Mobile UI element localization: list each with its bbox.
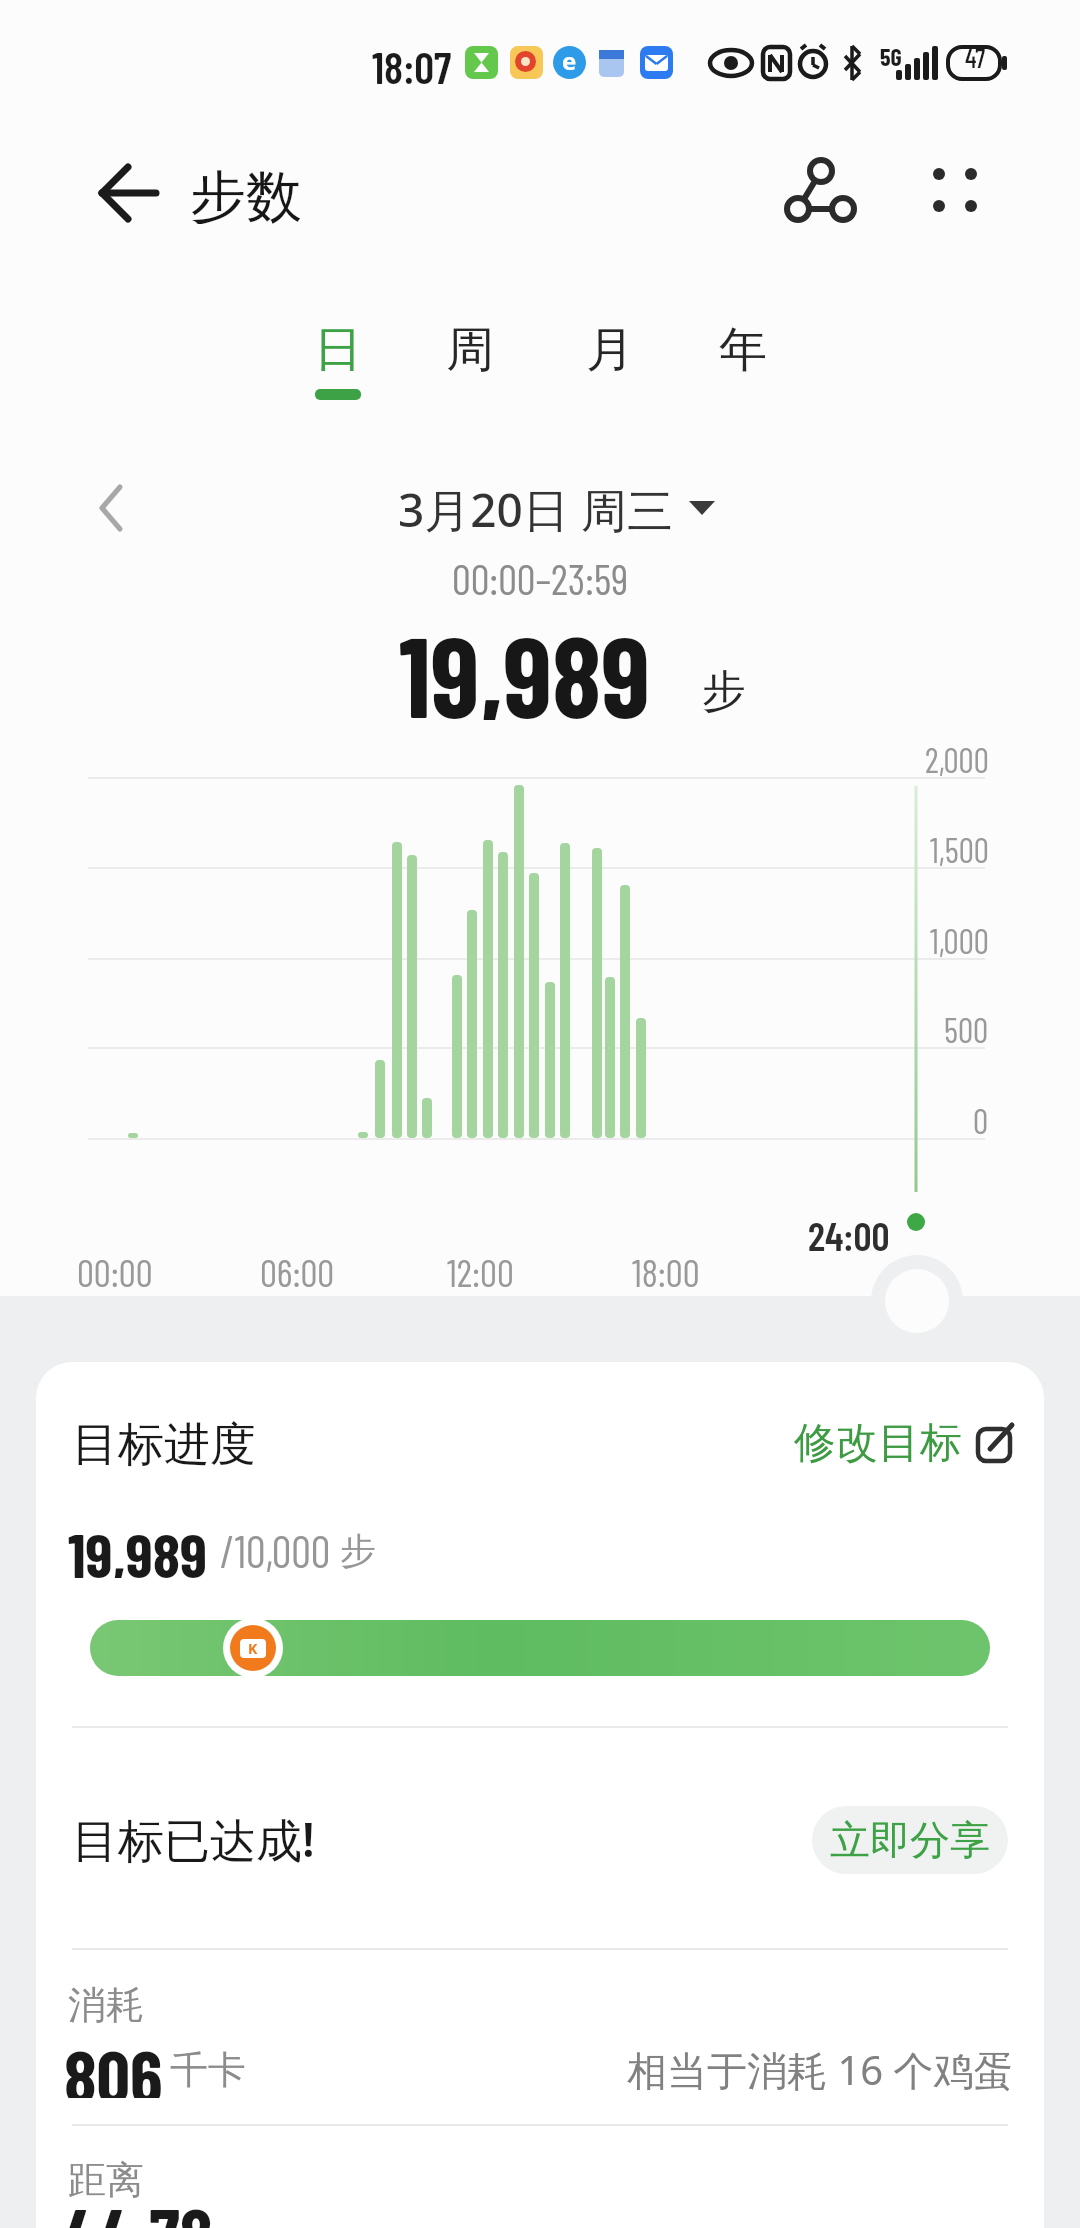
staticText: 2,000 [925,739,989,780]
staticText: 1,500 [930,829,989,870]
staticText: 立即分享 [830,1815,990,1865]
button[interactable]: 周 [420,319,520,381]
staticText: 步数 [190,162,302,224]
staticText: 相当于消耗 16 个鸡蛋 [627,2042,1014,2092]
staticText: 19,989 [68,1516,207,1578]
button[interactable] [76,152,168,236]
staticText: 日 [314,320,362,380]
staticText: /10,000 [220,1524,331,1574]
staticText: 距离 [68,2156,144,2204]
staticText: 00:00–23:59 [452,553,629,603]
staticText: 47 [965,42,986,72]
staticText: 消耗 [68,1981,144,2029]
button[interactable]: 年 [693,319,793,381]
staticText: 目标进度 [72,1416,256,1474]
staticText: 周 [446,320,494,380]
staticText: 00:00 [77,1249,153,1293]
staticText: K [248,1639,258,1658]
staticText: 千卡 [170,2046,246,2094]
staticText: 24:00 [808,1211,890,1255]
staticText: 18:00 [632,1249,700,1293]
staticText: 18:07 [372,40,452,88]
staticText: 修改目标 [794,1417,962,1470]
button[interactable] [915,150,1005,236]
staticText: e [562,44,577,77]
staticText: 年 [719,320,767,380]
button[interactable]: 3月20日 周三 [380,478,700,538]
staticText: 5G [880,42,902,68]
staticText: 19,989 [399,606,650,720]
button[interactable]: 立即分享 [812,1806,1008,1874]
staticText: 步 [702,664,746,716]
button[interactable] [778,150,868,236]
staticText: 目标已达成! [72,1808,315,1870]
staticText: 806 [64,2030,163,2098]
staticText: 44.78 [64,2188,213,2228]
staticText: 3月20日 周三 [398,478,673,538]
staticText: 月 [586,320,634,380]
staticText: 06:00 [260,1249,335,1293]
button[interactable]: 月 [560,319,660,381]
staticText: 1,000 [930,920,989,961]
staticText: 500 [944,1009,989,1050]
staticText: 步 [340,1528,376,1572]
staticText: 12:00 [447,1249,514,1293]
button[interactable]: 修改目标 [786,1412,1016,1474]
button[interactable]: 日 [288,319,388,381]
staticText: 0 [973,1100,989,1141]
